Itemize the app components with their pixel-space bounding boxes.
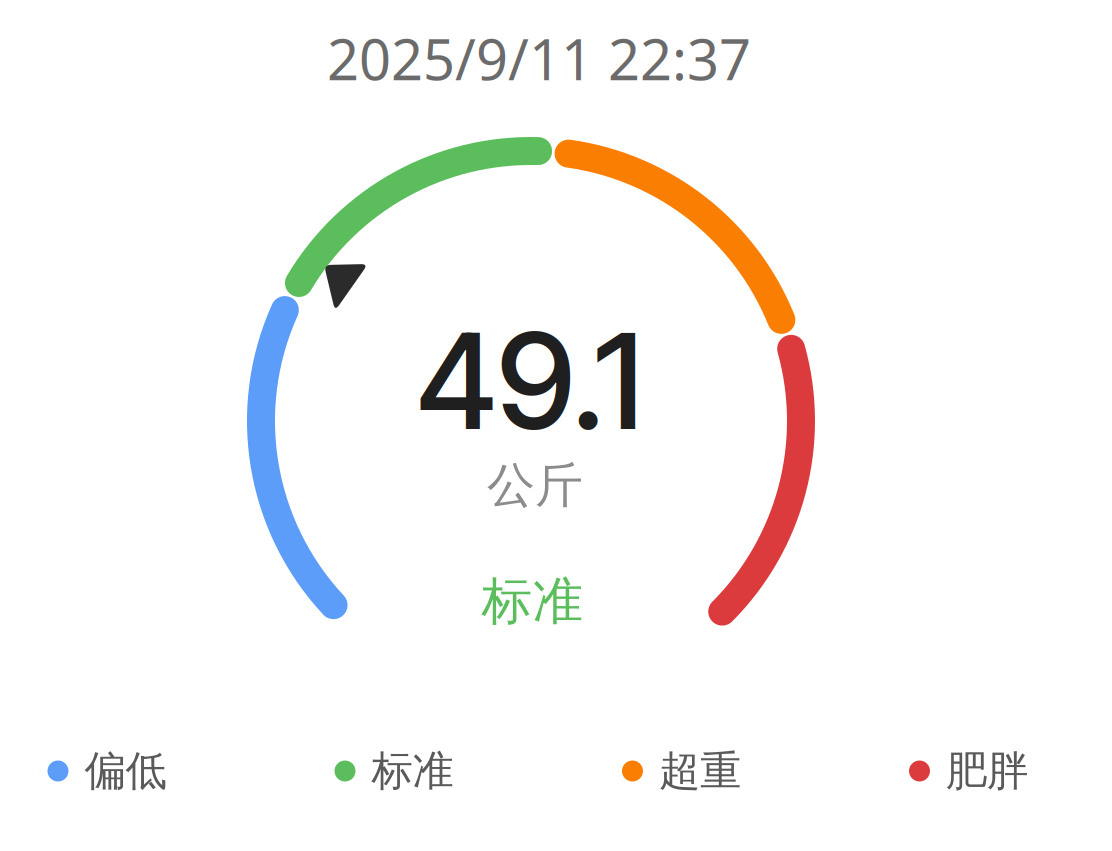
staticText: 标准 [481, 570, 583, 633]
staticText: 2025/9/11 22:37 [327, 21, 751, 96]
button[interactable]: 肥胖 [909, 746, 1028, 796]
staticText: 49.1 [416, 301, 643, 461]
button[interactable]: 超重 [622, 746, 741, 796]
staticText: 超重 [659, 746, 741, 796]
button[interactable]: 标准 [334, 746, 453, 796]
staticText: 偏低 [84, 746, 166, 796]
staticText: 标准 [371, 746, 453, 796]
staticText: 公斤 [487, 456, 583, 515]
button[interactable]: 偏低 [47, 746, 166, 796]
staticText: 肥胖 [946, 746, 1028, 796]
